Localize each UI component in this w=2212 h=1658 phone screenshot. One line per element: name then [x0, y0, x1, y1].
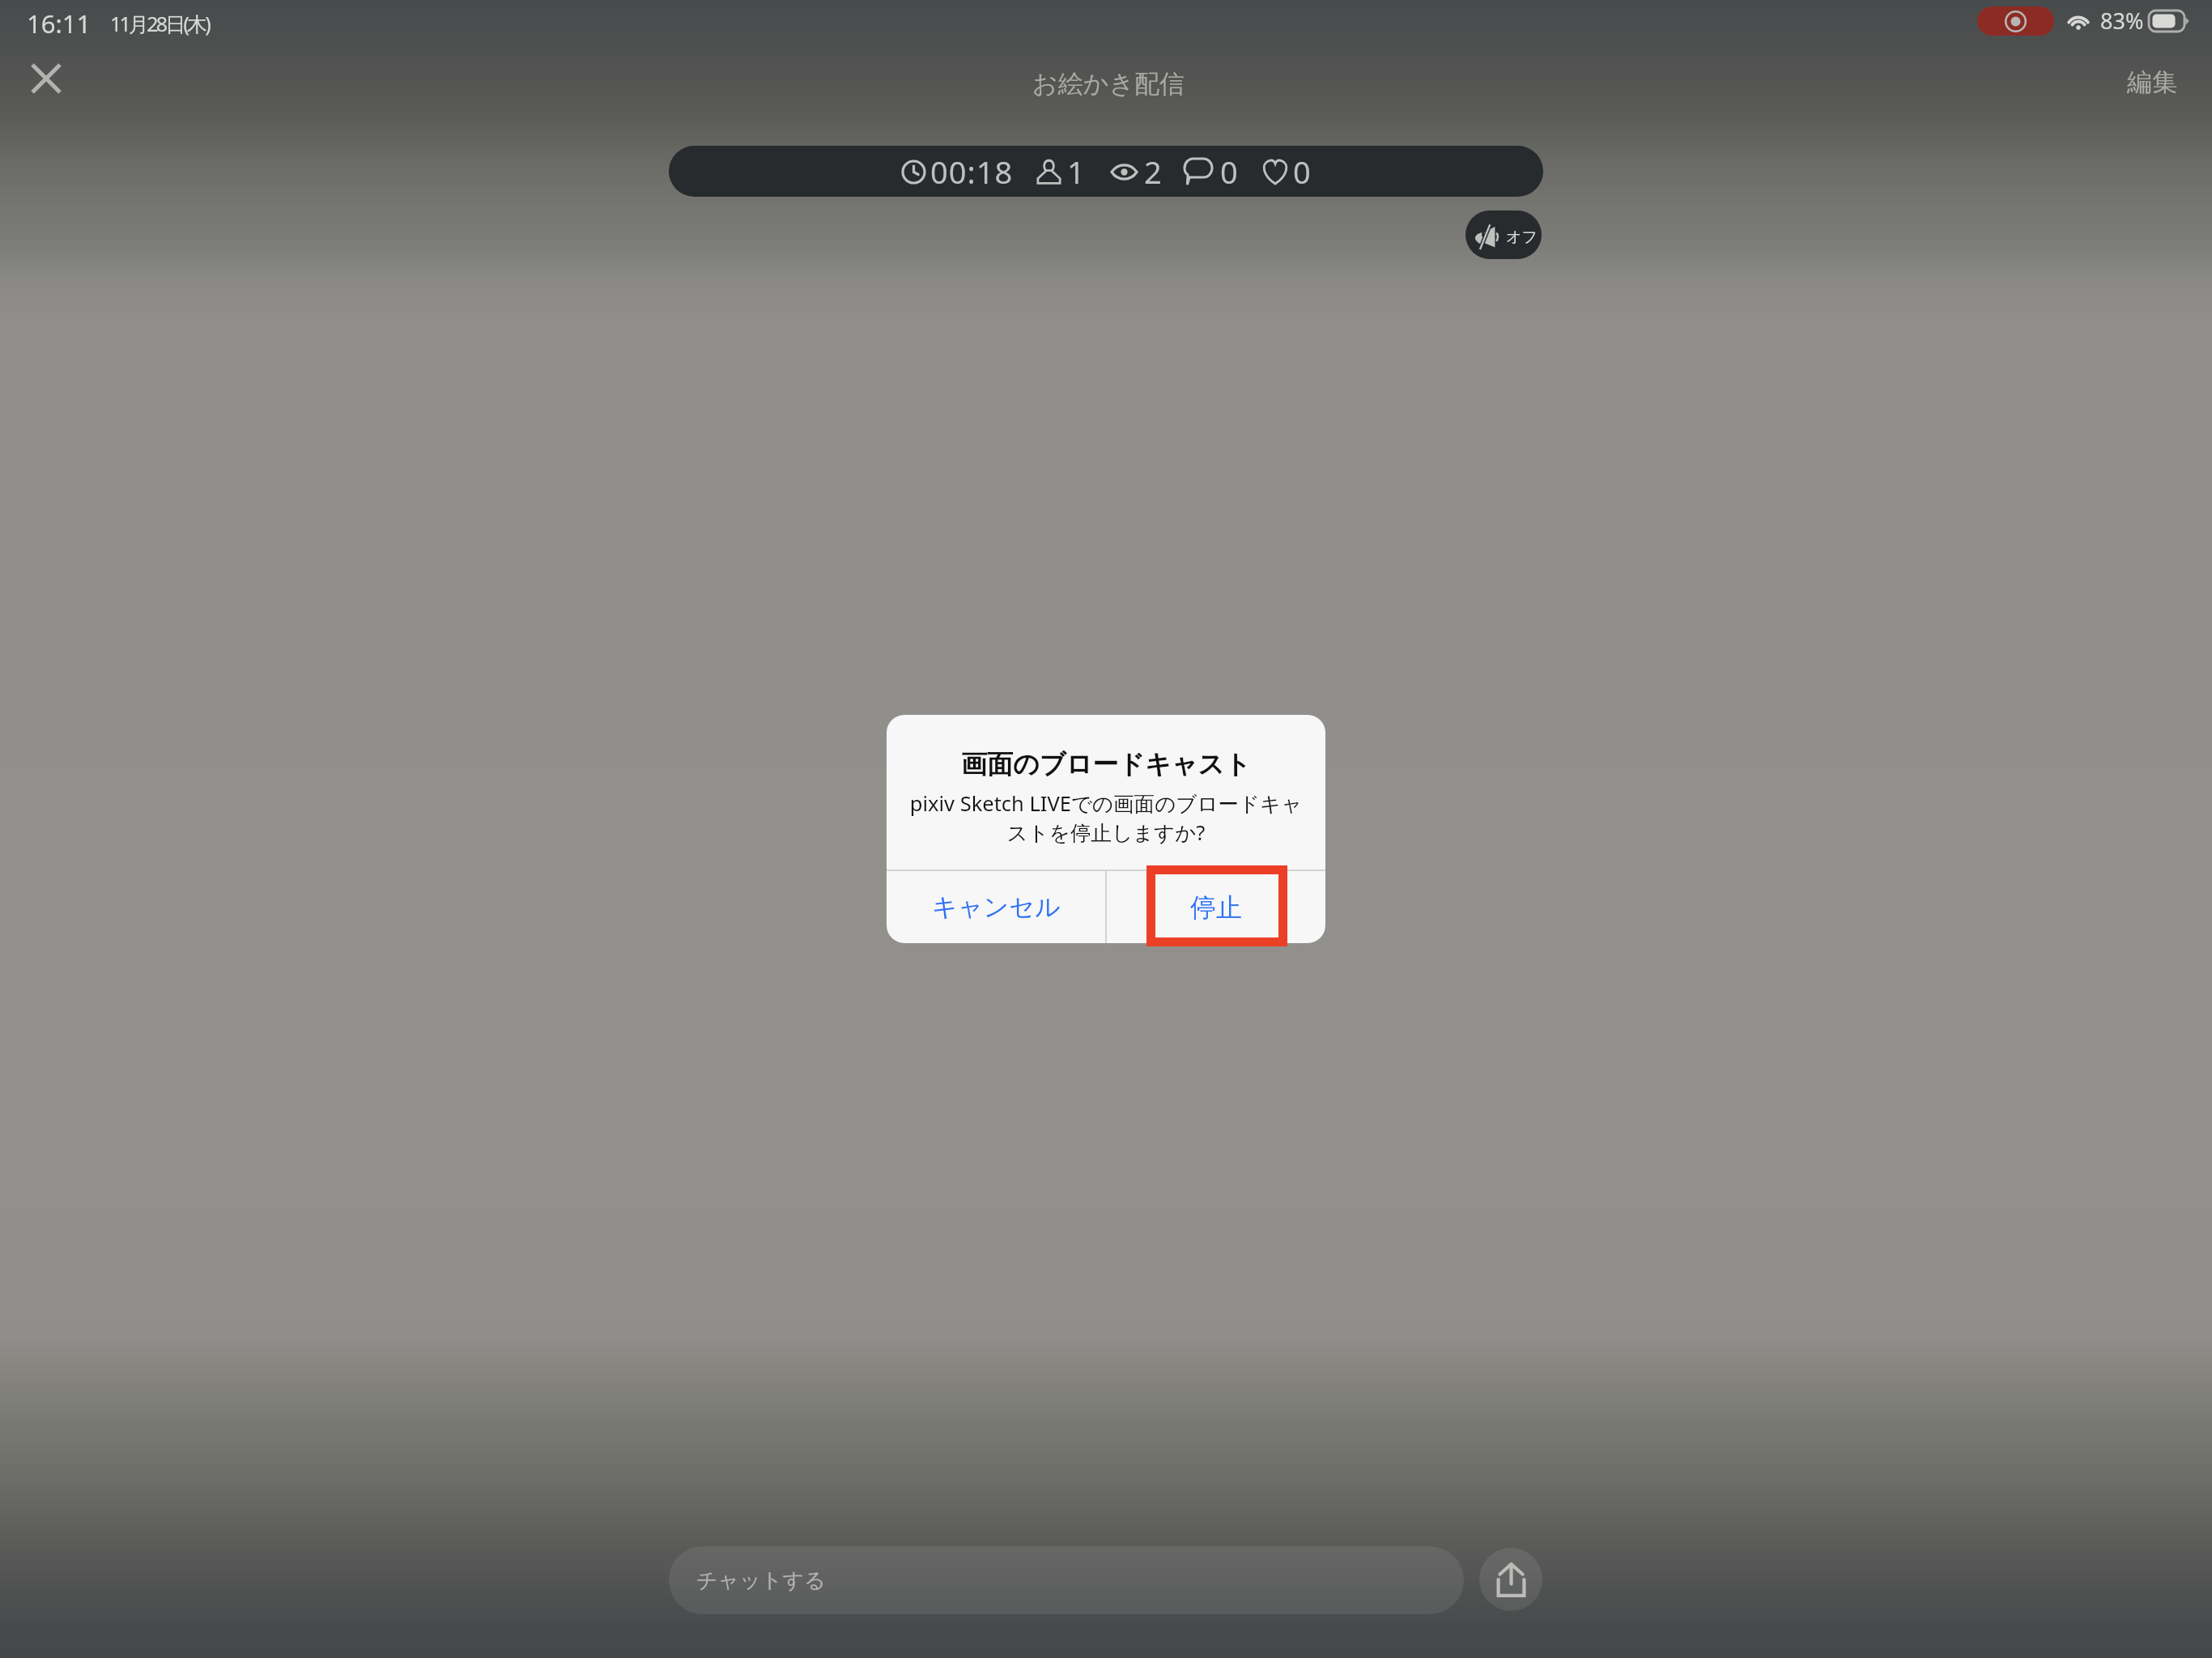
staticText: 2: [1144, 151, 1162, 193]
staticText: 83%: [2100, 6, 2144, 36]
staticText: 16:11: [27, 6, 91, 40]
staticText: 11月28日(木): [110, 10, 210, 37]
staticText: お絵かき配信: [1032, 68, 1185, 100]
button[interactable]: チャットする: [669, 1546, 1464, 1614]
staticText: 0: [1220, 151, 1238, 193]
staticText: 画面のブロードキャスト: [961, 748, 1251, 780]
button[interactable]: 00:18: [669, 146, 1543, 197]
staticText: 00:18: [930, 151, 1014, 193]
button[interactable]: Share: [1479, 1548, 1542, 1611]
staticText: 停止: [1190, 891, 1242, 924]
staticText: 編集: [2127, 66, 2177, 98]
button[interactable]: キャンセル: [887, 871, 1105, 943]
button[interactable]: オフ: [1465, 210, 1542, 259]
staticText: チャットする: [696, 1567, 826, 1594]
staticText: 1: [1067, 151, 1085, 193]
button[interactable]: Close: [8, 40, 84, 117]
staticText: オフ: [1506, 227, 1538, 247]
button[interactable]: 編集: [2127, 66, 2177, 98]
staticText: pixiv Sketch LIVEでの画面のブロードキャストを停止しますか?: [901, 789, 1311, 846]
button[interactable]: 停止: [1107, 871, 1325, 943]
staticText: 0: [1293, 151, 1311, 193]
staticText: キャンセル: [932, 891, 1061, 923]
